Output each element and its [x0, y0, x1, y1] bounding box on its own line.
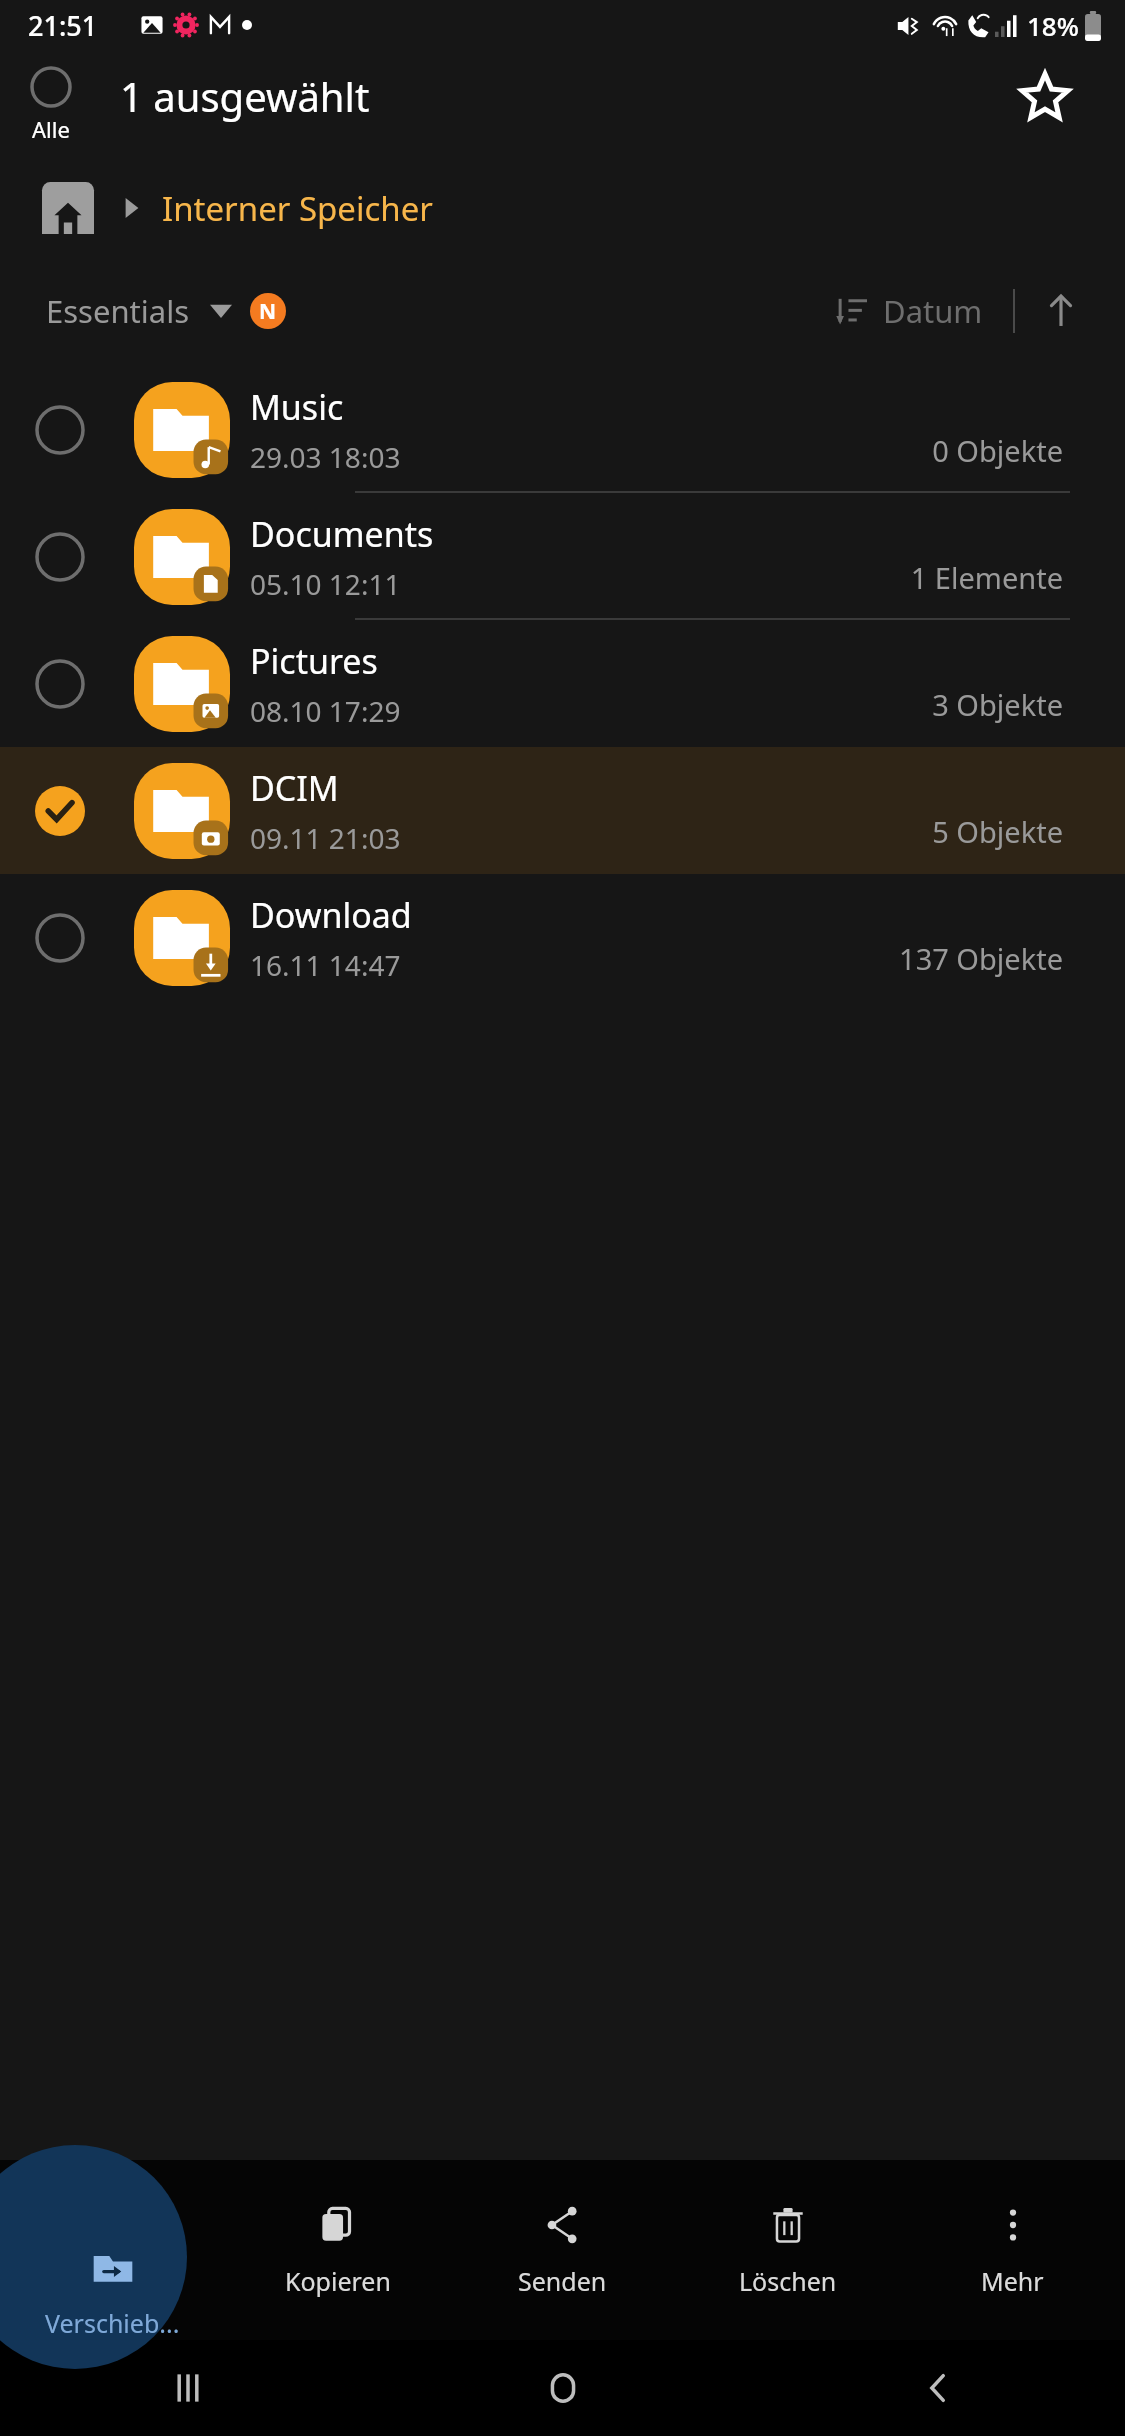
button[interactable] — [0, 2160, 225, 2340]
button[interactable]: Datum — [827, 282, 991, 340]
staticText: Senden — [518, 2264, 607, 2298]
button[interactable]: Verschieb... — [0, 2244, 225, 2340]
staticText: Pictures — [250, 638, 378, 684]
staticText: Alle — [32, 114, 70, 144]
staticText: Verschieb... — [45, 2306, 180, 2340]
staticText: 05.10 12:11 — [250, 565, 401, 603]
button[interactable]: Mehr — [900, 2160, 1125, 2340]
staticText: Mehr — [981, 2264, 1044, 2298]
staticText: 137 Objekte — [899, 939, 1063, 978]
button[interactable]: Kopieren — [225, 2160, 450, 2340]
button[interactable]: DCIM — [0, 747, 1125, 874]
staticText — [109, 2264, 116, 2298]
button[interactable]: Löschen — [675, 2160, 900, 2340]
button[interactable]: Documents — [0, 493, 1125, 620]
button[interactable]: Letzte Apps — [0, 2340, 375, 2436]
staticText: Interner Speicher — [162, 186, 433, 231]
button[interactable]: Alle — [26, 62, 76, 148]
staticText: 21:51 — [28, 7, 98, 44]
staticText: 29.03 18:03 — [250, 438, 401, 476]
staticText: Documents — [250, 511, 434, 557]
staticText: 09.11 21:03 — [250, 819, 401, 857]
staticText: 5 Objekte — [932, 812, 1063, 851]
staticText: DCIM — [250, 765, 339, 811]
staticText: 1 ausgewählt — [120, 69, 370, 123]
button[interactable]: Aufsteigend sortieren — [1037, 287, 1085, 335]
staticText: N — [259, 297, 277, 326]
staticText: Kopieren — [285, 2264, 391, 2298]
button[interactable]: Zurück — [750, 2340, 1125, 2436]
button[interactable]: Pictures — [0, 620, 1125, 747]
button[interactable]: Startseite — [375, 2340, 750, 2436]
staticText: 1 Elemente — [910, 558, 1063, 597]
staticText: Music — [250, 384, 344, 430]
staticText: Essentials — [46, 290, 190, 332]
button[interactable]: Essentials — [34, 282, 298, 340]
button[interactable]: Favorit — [1017, 69, 1073, 125]
button[interactable]: Senden — [450, 2160, 675, 2340]
button[interactable]: Interner Speicher — [0, 160, 1125, 256]
staticText: Datum — [883, 290, 983, 332]
staticText: 16.11 14:47 — [250, 946, 401, 984]
staticText: 0 Objekte — [932, 431, 1063, 470]
staticText: 18% — [1027, 8, 1079, 43]
button[interactable]: Download — [0, 874, 1125, 1001]
staticText: 3 Objekte — [932, 685, 1063, 724]
staticText: Download — [250, 892, 412, 938]
button[interactable]: Music — [0, 366, 1125, 493]
staticText: 08.10 17:29 — [250, 692, 401, 730]
staticText: Löschen — [739, 2264, 837, 2298]
